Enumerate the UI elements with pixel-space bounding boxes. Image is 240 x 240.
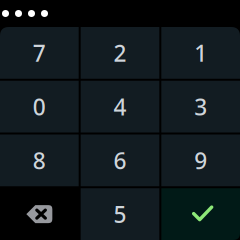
button[interactable]: 8 [0,134,79,186]
button[interactable]: 5 [81,188,159,240]
staticText: 9 [194,145,207,175]
button[interactable]: 3 [161,81,240,133]
button[interactable]: 1 [161,27,240,79]
staticText: 2 [113,38,126,68]
staticText: 3 [194,92,207,122]
staticText: 1 [194,38,207,68]
button[interactable]: 2 [81,27,159,79]
button[interactable]: 9 [161,134,240,186]
button[interactable]: 4 [81,81,159,133]
button[interactable]: 0 [0,81,79,133]
staticText: 5 [113,199,126,229]
button[interactable]: Delete [0,188,79,240]
button[interactable]: 7 [0,27,79,79]
button[interactable]: 6 [81,134,159,186]
staticText: 8 [33,145,46,175]
staticText: 6 [113,145,126,175]
staticText: 0 [33,92,46,122]
staticText: 4 [113,92,126,122]
staticText: 7 [33,38,46,68]
button[interactable]: Confirm [161,188,240,240]
